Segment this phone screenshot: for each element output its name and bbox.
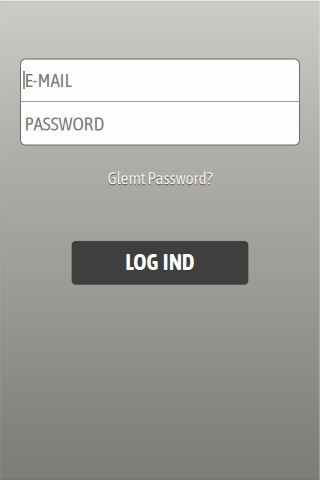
staticText: E-MAIL (24, 69, 71, 91)
button[interactable]: LOG (71, 241, 248, 285)
button[interactable]: Glemt Password? (99, 164, 220, 192)
staticText: Glemt Password? (107, 168, 212, 188)
staticText: Glemt Password? (107, 169, 212, 189)
staticText: IND (163, 249, 195, 275)
staticText: LOG (125, 249, 158, 275)
staticText: PASSWORD (24, 112, 104, 135)
